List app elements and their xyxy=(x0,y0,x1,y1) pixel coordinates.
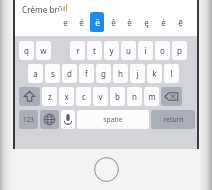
button[interactable]: Shift xyxy=(19,87,40,106)
staticText: ė xyxy=(161,17,166,28)
staticText: r xyxy=(76,45,80,56)
staticText: w xyxy=(40,45,47,56)
button[interactable]: s xyxy=(45,64,60,83)
button[interactable]: é xyxy=(74,12,88,32)
staticText: é xyxy=(79,17,84,28)
staticText: t xyxy=(93,45,96,56)
staticText: c xyxy=(82,91,86,102)
staticText: m xyxy=(148,91,156,102)
button[interactable]: return xyxy=(151,110,195,129)
button[interactable]: ė xyxy=(156,12,171,32)
staticText: h xyxy=(118,68,123,79)
button[interactable]: ę xyxy=(139,12,154,32)
staticText: p xyxy=(177,45,182,56)
button[interactable]: d xyxy=(62,64,77,83)
button[interactable]: c xyxy=(76,87,91,106)
button[interactable]: r xyxy=(70,41,85,60)
staticText: d xyxy=(67,68,72,79)
button[interactable]: 123 xyxy=(19,110,38,129)
staticText: f xyxy=(85,68,88,79)
button[interactable]: t xyxy=(87,41,102,60)
button[interactable]: i xyxy=(138,41,153,60)
staticText: u xyxy=(126,45,131,56)
button[interactable]: q xyxy=(19,41,34,60)
staticText: z xyxy=(48,91,52,102)
button[interactable]: Change keyboard xyxy=(40,110,59,129)
staticText: 123 xyxy=(23,115,34,124)
staticText: return xyxy=(163,115,184,124)
staticText: i xyxy=(144,45,147,56)
button[interactable]: ē xyxy=(173,12,188,32)
button[interactable]: Crème brûl xyxy=(22,4,67,15)
staticText: o xyxy=(160,45,165,56)
button[interactable]: ê xyxy=(106,12,120,32)
staticText: ê xyxy=(111,17,116,28)
button[interactable]: a xyxy=(28,64,43,83)
button[interactable]: e xyxy=(58,12,72,32)
staticText: e xyxy=(63,17,68,28)
staticText: ë xyxy=(95,17,100,28)
button[interactable]: w xyxy=(36,41,51,60)
staticText: q xyxy=(24,45,29,56)
staticText: s xyxy=(51,68,55,79)
staticText: spatie xyxy=(103,115,123,124)
button[interactable]: j xyxy=(130,64,145,83)
staticText: j xyxy=(136,68,139,79)
staticText: è xyxy=(127,17,132,28)
staticText: y xyxy=(109,45,114,56)
button[interactable]: k xyxy=(147,64,162,83)
button[interactable]: Dictation xyxy=(61,110,75,129)
button[interactable]: è xyxy=(122,12,137,32)
button[interactable]: ë xyxy=(90,12,104,32)
staticText: ę xyxy=(144,17,149,28)
button[interactable]: x xyxy=(59,87,74,106)
button[interactable]: spatie xyxy=(77,110,149,129)
staticText: k xyxy=(152,68,157,79)
staticText: n xyxy=(132,91,137,102)
button[interactable]: p xyxy=(172,41,187,60)
staticText: Crème brûl xyxy=(22,4,66,15)
button[interactable]: o xyxy=(155,41,170,60)
staticText: a xyxy=(33,68,38,79)
button[interactable]: g xyxy=(96,64,111,83)
button[interactable]: b xyxy=(110,87,125,106)
button[interactable]: n xyxy=(127,87,142,106)
button[interactable]: v xyxy=(93,87,108,106)
staticText: ē xyxy=(178,17,183,28)
button[interactable]: Home xyxy=(94,157,119,182)
staticText: b xyxy=(115,91,120,102)
button[interactable]: l xyxy=(164,64,179,83)
button[interactable]: Delete xyxy=(161,87,182,106)
button[interactable]: m xyxy=(144,87,159,106)
staticText: v xyxy=(98,91,103,102)
button[interactable]: y xyxy=(104,41,119,60)
staticText: g xyxy=(101,68,106,79)
button[interactable]: z xyxy=(42,87,57,106)
button[interactable]: f xyxy=(79,64,94,83)
button[interactable]: h xyxy=(113,64,128,83)
staticText: x xyxy=(64,91,69,102)
staticText: l xyxy=(170,68,173,79)
button[interactable]: u xyxy=(121,41,136,60)
